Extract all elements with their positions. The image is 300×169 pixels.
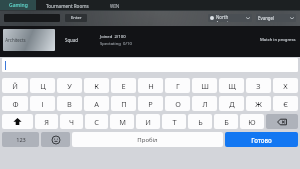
button[interactable]: Е xyxy=(111,78,136,93)
button[interactable]: Evangel xyxy=(256,14,296,22)
staticText: К xyxy=(94,81,99,91)
button[interactable]: Ш xyxy=(192,78,217,93)
button[interactable]: Й xyxy=(2,78,28,93)
button[interactable]: Ю xyxy=(240,114,264,129)
button[interactable] xyxy=(2,58,298,72)
staticText: О xyxy=(175,99,181,109)
staticText: Joined 2/100 xyxy=(100,34,126,40)
button[interactable]: Shift xyxy=(2,114,33,129)
button[interactable]: Я xyxy=(35,114,58,129)
staticText: Architects xyxy=(3,37,26,43)
staticText: Enter xyxy=(71,15,82,21)
button[interactable]: Б xyxy=(214,114,238,129)
button[interactable]: Пробіл xyxy=(72,132,223,147)
staticText: Є xyxy=(283,99,288,109)
button[interactable]: Ь xyxy=(188,114,212,129)
staticText: WIN xyxy=(110,3,120,9)
staticText: В xyxy=(67,99,72,109)
staticText: У xyxy=(67,81,72,91)
staticText: Р xyxy=(148,99,153,109)
staticText: І xyxy=(41,99,44,109)
button[interactable]: Р xyxy=(138,96,163,111)
button[interactable]: Architects xyxy=(3,29,55,51)
button[interactable]: У xyxy=(57,78,82,93)
staticText: Б xyxy=(224,117,229,127)
staticText: Match in progress xyxy=(260,37,296,43)
button[interactable]: Emoji xyxy=(41,132,70,147)
button[interactable]: І xyxy=(30,96,55,111)
staticText: Ц xyxy=(40,81,46,91)
button[interactable]: Ж xyxy=(246,96,271,111)
button[interactable]: И xyxy=(136,114,160,129)
staticText: Д xyxy=(229,99,235,109)
button[interactable]: Н xyxy=(138,78,163,93)
staticText: Squad xyxy=(65,37,78,43)
staticText: Evangel xyxy=(258,15,290,21)
button[interactable]: П xyxy=(111,96,136,111)
staticText: Ж xyxy=(255,99,262,109)
staticText: Gaming xyxy=(9,2,28,9)
staticText: И xyxy=(145,117,151,127)
staticText: Tournament Rooms xyxy=(46,3,89,9)
staticText: Й xyxy=(12,81,18,91)
button[interactable]: Tournament Rooms xyxy=(36,0,98,11)
button[interactable]: М xyxy=(110,114,134,129)
staticText: Ф xyxy=(12,99,19,109)
button[interactable]: 123 xyxy=(2,132,39,147)
button[interactable]: О xyxy=(165,96,190,111)
button[interactable]: Ф xyxy=(2,96,28,111)
button[interactable]: Т xyxy=(162,114,186,129)
staticText: Щ xyxy=(228,81,236,91)
button[interactable]: Ц xyxy=(30,78,55,93)
button[interactable]: А xyxy=(84,96,109,111)
staticText: А xyxy=(94,99,99,109)
button[interactable]: Enter xyxy=(65,14,87,22)
staticText: Готово xyxy=(251,136,272,144)
button[interactable]: Х xyxy=(273,78,298,93)
staticText: З xyxy=(256,81,261,91)
button[interactable]: Щ xyxy=(219,78,244,93)
button[interactable]: North America xyxy=(208,14,252,22)
button[interactable]: Л xyxy=(192,96,217,111)
staticText: П xyxy=(121,99,127,109)
button[interactable]: З xyxy=(246,78,271,93)
staticText: Ю xyxy=(248,117,256,127)
staticText: Spectating 0/10 xyxy=(100,41,132,47)
button[interactable]: С xyxy=(85,114,108,129)
button[interactable]: Д xyxy=(219,96,244,111)
button[interactable]: Г xyxy=(165,78,190,93)
staticText: М xyxy=(119,117,126,127)
staticText: Е xyxy=(121,81,126,91)
staticText: Г xyxy=(176,81,180,91)
staticText: Ч xyxy=(69,117,74,127)
staticText: С xyxy=(94,117,99,127)
staticText: Ь xyxy=(198,117,203,127)
button[interactable]: Backspace xyxy=(266,114,298,129)
staticText: Я xyxy=(44,117,49,127)
button[interactable]: WIN xyxy=(98,0,132,11)
staticText: North America xyxy=(216,14,246,22)
button[interactable]: Є xyxy=(273,96,298,111)
staticText: Т xyxy=(172,117,177,127)
button[interactable]: Готово xyxy=(225,132,298,147)
button[interactable]: Gaming xyxy=(0,0,36,11)
button[interactable]: К xyxy=(84,78,109,93)
staticText: Л xyxy=(202,99,208,109)
staticText: Н xyxy=(148,81,154,91)
button[interactable]: Ч xyxy=(60,114,83,129)
staticText: 123 xyxy=(16,136,26,144)
staticText: Х xyxy=(283,81,288,91)
staticText: Пробіл xyxy=(137,136,158,144)
staticText: Ш xyxy=(201,81,209,91)
button[interactable]: В xyxy=(57,96,82,111)
